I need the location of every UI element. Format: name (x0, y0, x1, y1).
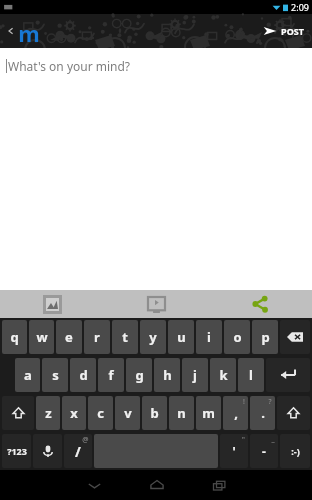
staticText: x (70, 404, 78, 422)
button[interactable]: o (224, 320, 250, 354)
staticText: y (149, 328, 157, 346)
button[interactable]: POST (255, 18, 312, 44)
staticText: n (177, 404, 186, 422)
staticText: w (36, 328, 48, 346)
staticText: m (18, 18, 40, 44)
staticText: a (24, 366, 32, 384)
staticText: POST (281, 25, 304, 37)
staticText: ?123 (7, 445, 27, 457)
button[interactable]: e (56, 320, 82, 354)
staticText: d (79, 366, 88, 384)
button[interactable]: t (112, 320, 138, 354)
staticText: - (262, 443, 266, 459)
staticText: f (108, 366, 114, 384)
staticText: k (219, 366, 228, 384)
button[interactable]: n (169, 396, 194, 430)
staticText: r (94, 328, 100, 346)
button[interactable]: Add video (144, 292, 169, 317)
button[interactable]: w (29, 320, 54, 354)
button[interactable]: y (140, 320, 166, 354)
button[interactable]: Share (248, 292, 272, 316)
button[interactable]: q (2, 320, 27, 354)
staticText: @ (82, 435, 89, 445)
staticText: o (233, 328, 242, 346)
button[interactable]: Back (63, 470, 126, 500)
button[interactable]: - (250, 434, 278, 468)
button[interactable]: b (142, 396, 167, 430)
button[interactable]: / (64, 434, 92, 468)
staticText: / (75, 442, 81, 461)
button[interactable]: ' (220, 434, 248, 468)
button[interactable]: Enter (266, 358, 310, 392)
button[interactable]: c (88, 396, 113, 430)
staticText: v (124, 404, 132, 422)
staticText: s (52, 366, 59, 384)
button[interactable]: p (252, 320, 278, 354)
button[interactable]: m (196, 396, 221, 430)
button[interactable]: Backspace (280, 320, 310, 354)
button[interactable]: v (115, 396, 140, 430)
button[interactable]: s (42, 358, 68, 392)
button[interactable]: j (182, 358, 208, 392)
staticText: _ (271, 435, 275, 445)
staticText: t (122, 328, 128, 346)
button[interactable]: z (36, 396, 60, 430)
button[interactable]: u (168, 320, 194, 354)
staticText: u (177, 328, 186, 346)
button[interactable]: Shift (2, 396, 34, 430)
staticText: h (163, 366, 172, 384)
staticText: ' (232, 443, 236, 459)
staticText: g (135, 366, 144, 384)
button[interactable]: i (196, 320, 222, 354)
staticText: b (150, 404, 159, 422)
staticText: q (10, 328, 19, 346)
staticText: What's on your mind? (8, 58, 131, 74)
button[interactable]: Add photo (40, 292, 65, 317)
button[interactable]: . (250, 396, 275, 430)
button[interactable]: Shift (277, 396, 310, 430)
button[interactable]: l (238, 358, 264, 392)
staticText: i (207, 328, 211, 346)
button[interactable]: g (126, 358, 152, 392)
button[interactable]: d (70, 358, 96, 392)
button[interactable]: Voice input (33, 434, 62, 468)
button[interactable]: a (15, 358, 40, 392)
staticText: z (45, 404, 52, 422)
staticText: ? (268, 397, 272, 407)
button[interactable]: ?123 (2, 434, 31, 468)
staticText: l (249, 366, 253, 384)
button[interactable]: h (154, 358, 180, 392)
staticText: 2:09 (291, 1, 309, 13)
button[interactable]: k (210, 358, 236, 392)
button[interactable]: Navigate up (4, 14, 43, 48)
staticText: m (202, 404, 215, 422)
staticText: , (234, 404, 238, 422)
staticText: ! (243, 397, 245, 407)
staticText: p (261, 328, 270, 346)
button[interactable]: :-) (280, 434, 310, 468)
staticText: . (261, 404, 265, 422)
button[interactable]: x (62, 396, 86, 430)
button[interactable]: Home (126, 470, 188, 500)
button[interactable]: f (98, 358, 124, 392)
staticText: :-) (291, 445, 300, 457)
button[interactable]: Recent apps (188, 470, 250, 500)
button[interactable]: , (223, 396, 248, 430)
staticText: j (193, 366, 197, 384)
staticText: " (242, 435, 245, 445)
button[interactable]: What's on your mind? (0, 48, 312, 290)
staticText: e (65, 328, 73, 346)
staticText: c (97, 404, 104, 422)
button[interactable]: r (84, 320, 110, 354)
